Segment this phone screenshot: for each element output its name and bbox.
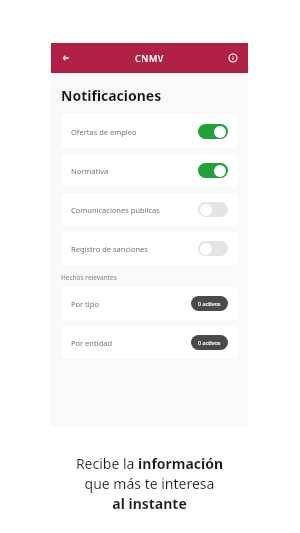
staticText: Notificaciones — [61, 86, 162, 105]
button[interactable]: Por entidad — [61, 326, 238, 359]
staticText: Comunicaciones públicas — [71, 205, 160, 215]
button[interactable]: Registro de sanciones — [61, 232, 238, 265]
button[interactable]: Desactivado — [198, 202, 228, 217]
staticText: Normativa — [71, 166, 109, 176]
staticText: 0 activos — [198, 300, 221, 307]
staticText: 0 activos — [198, 339, 221, 346]
staticText: Hechos relevantes — [61, 273, 117, 282]
button[interactable]: Ofertas de empleo — [61, 115, 238, 148]
staticText: Registro de sanciones — [71, 244, 148, 254]
button[interactable]: Comunicaciones públicas — [61, 193, 238, 226]
staticText: Por tipo — [71, 299, 99, 309]
button[interactable]: Por tipo — [61, 287, 238, 320]
button[interactable]: Activado — [198, 163, 228, 178]
button[interactable]: Normativa — [61, 154, 238, 187]
staticText: Recibe la información que más te interes… — [51, 454, 248, 513]
staticText: Ofertas de empleo — [71, 127, 137, 137]
button[interactable]: Información — [226, 51, 240, 65]
button[interactable]: Desactivado — [198, 241, 228, 256]
button[interactable]: Activado — [198, 124, 228, 139]
staticText: CNMV — [135, 52, 164, 64]
button[interactable]: Atrás — [59, 51, 73, 65]
staticText: Por entidad — [71, 338, 113, 348]
